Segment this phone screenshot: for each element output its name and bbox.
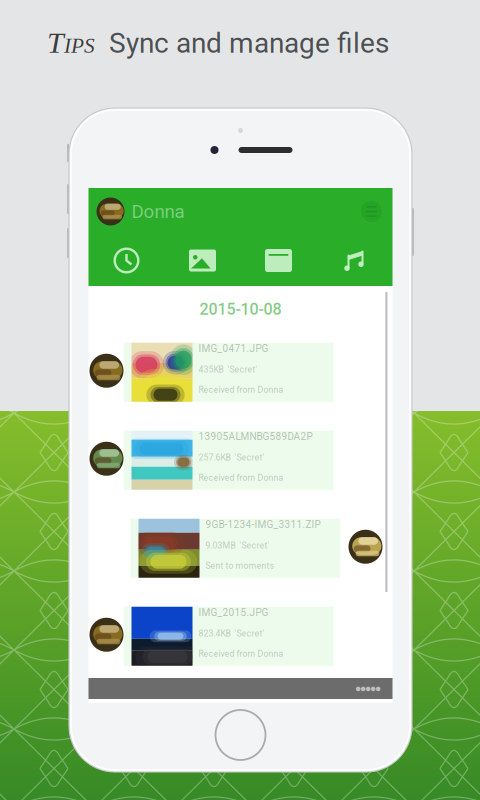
staticText: Sync and manage files bbox=[95, 27, 389, 60]
staticText: 13905ALMNBG589DA2P bbox=[198, 431, 312, 442]
staticText: 2015-10-08 bbox=[199, 300, 281, 319]
button[interactable]: Music bbox=[316, 235, 392, 286]
button[interactable]: IMG_2015.JPG bbox=[123, 607, 333, 666]
staticText: T bbox=[47, 26, 64, 59]
button[interactable]: Files bbox=[240, 235, 316, 286]
staticText: 9.03MB 'Secret' bbox=[205, 540, 269, 551]
staticText: Received from Donna bbox=[198, 473, 283, 483]
staticText: Received from Donna bbox=[198, 385, 283, 395]
button[interactable]: 13905ALMNBG589DA2P bbox=[123, 431, 333, 490]
button[interactable]: IMG_0471.JPG bbox=[123, 343, 333, 402]
staticText: IMG_0471.JPG bbox=[198, 343, 268, 354]
staticText: 9GB-1234-IMG_3311.ZIP bbox=[205, 519, 320, 530]
staticText: ●●●●● bbox=[355, 685, 380, 692]
staticText: 823.4KB 'Secret' bbox=[198, 628, 264, 639]
staticText: IMG_2015.JPG bbox=[198, 607, 268, 618]
staticText: 435KB 'Secret' bbox=[198, 364, 257, 375]
button[interactable]: 9GB-1234-IMG_3311.ZIP bbox=[130, 519, 340, 578]
staticText: 257.6KB 'Secret' bbox=[198, 452, 264, 463]
staticText: Sent to moments bbox=[205, 561, 273, 571]
button[interactable]: Photos bbox=[164, 235, 240, 286]
staticText: IPS bbox=[64, 34, 95, 57]
button[interactable]: Recent bbox=[88, 235, 164, 286]
staticText: Received from Donna bbox=[198, 649, 283, 659]
button[interactable]: Menu bbox=[356, 196, 386, 226]
staticText: Donna bbox=[131, 201, 184, 222]
